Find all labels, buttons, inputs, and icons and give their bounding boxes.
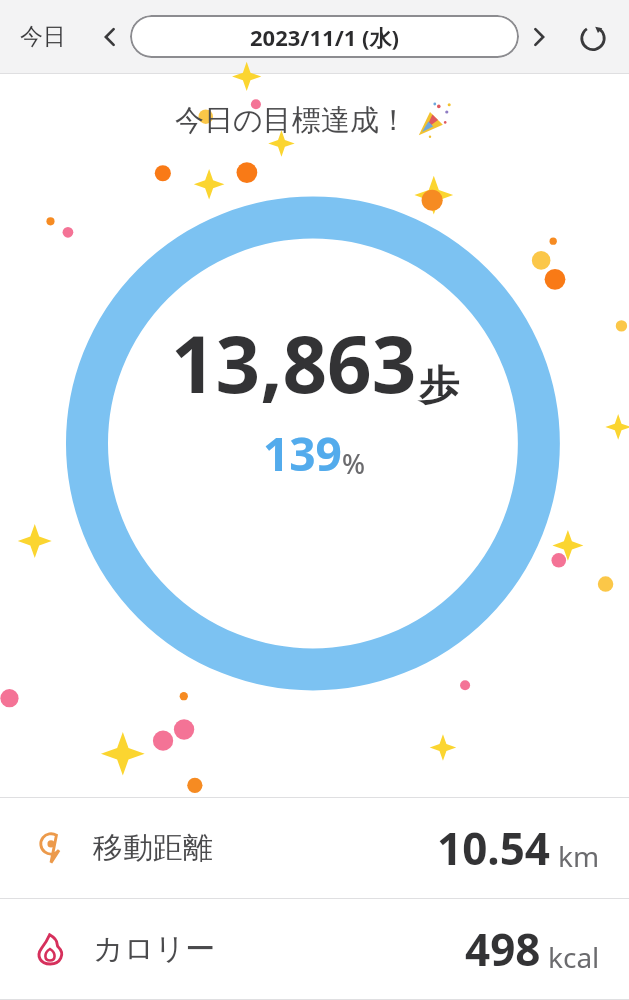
button[interactable]: カロリー [0, 899, 629, 999]
staticText: 移動距離 [93, 829, 213, 867]
staticText: 歩 [419, 360, 459, 410]
button[interactable]: 翌日 [519, 17, 559, 57]
staticText: 498 [465, 919, 541, 979]
staticText: % [342, 445, 366, 482]
staticText: 10.54 [437, 818, 551, 878]
button[interactable]: 前日 [90, 17, 130, 57]
button[interactable]: 2023/11/1 (水) [130, 15, 519, 58]
staticText: 2023/11/1 (水) [250, 22, 399, 52]
staticText: 13,863 [171, 310, 417, 416]
staticText: 今日 [20, 22, 66, 51]
staticText: kcal [548, 938, 600, 976]
button[interactable]: 今日 [14, 16, 72, 57]
button[interactable]: 移動距離 [0, 798, 629, 898]
staticText: km [558, 837, 600, 875]
staticText: 139 [263, 422, 342, 485]
staticText: カロリー [93, 930, 216, 968]
staticText: 今日の目標達成！ [175, 102, 408, 139]
button[interactable]: 更新 [571, 15, 615, 59]
